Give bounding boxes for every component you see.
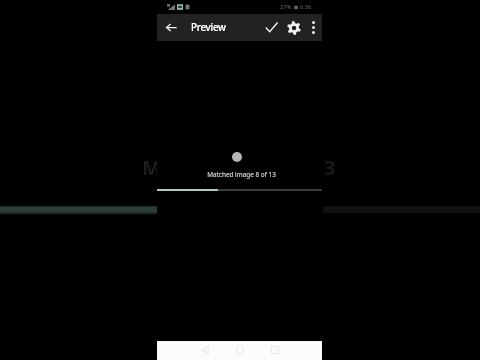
- staticText: 6:36: [300, 3, 312, 11]
- staticText: M: [142, 154, 161, 181]
- staticText: 3: [324, 154, 336, 181]
- staticText: Matched image 8 of 13: [207, 170, 276, 179]
- button[interactable]: More options: [305, 14, 322, 41]
- button[interactable]: Back: [189, 341, 221, 359]
- staticText: Preview: [191, 21, 226, 34]
- button[interactable]: Settings: [283, 14, 305, 41]
- button[interactable]: Done: [259, 14, 283, 41]
- button[interactable]: Home: [224, 341, 256, 359]
- staticText: 27%: [280, 3, 292, 11]
- button[interactable]: Back: [157, 14, 185, 41]
- button[interactable]: Recents: [259, 341, 291, 359]
